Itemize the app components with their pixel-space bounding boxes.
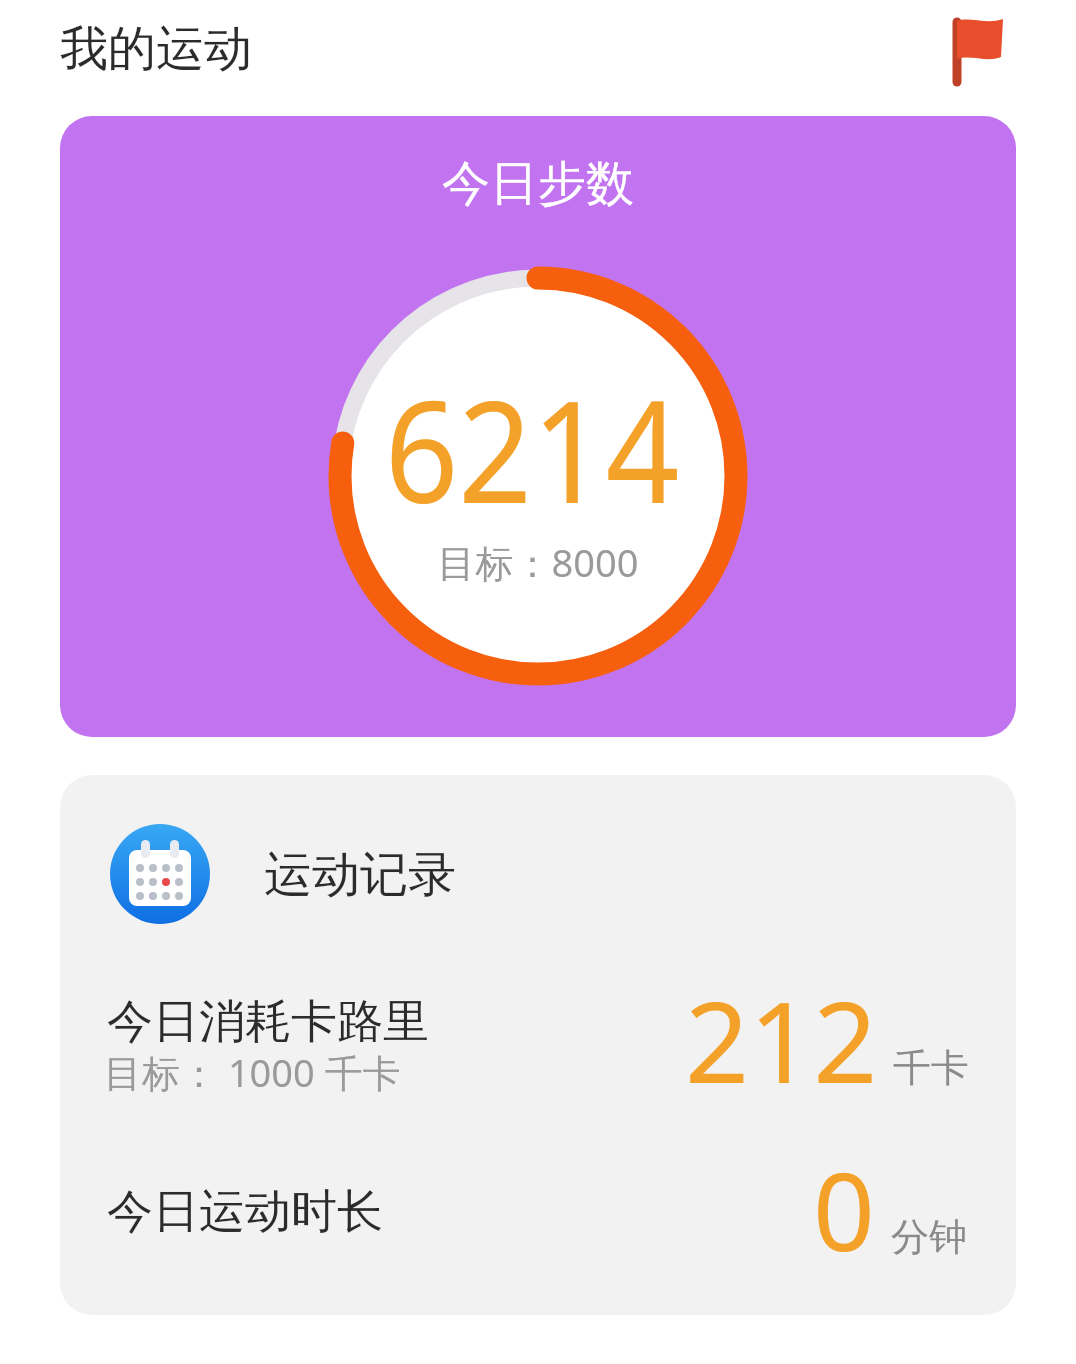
staticText: 今日运动时长 xyxy=(107,1183,383,1241)
staticText: 212 xyxy=(685,963,878,1093)
staticText: 分钟 xyxy=(891,1213,967,1261)
button[interactable] xyxy=(110,824,210,924)
staticText: 目标： 1000 千卡 xyxy=(104,1046,401,1098)
staticText: 千卡 xyxy=(893,1044,969,1092)
staticText: 今日步数 xyxy=(60,154,1016,214)
staticText: 今日消耗卡路里 xyxy=(107,993,429,1051)
staticText: 我的运动 xyxy=(60,19,252,79)
staticText: 6214 xyxy=(92,353,972,544)
staticText: 0 xyxy=(813,1136,875,1256)
staticText: 目标：8000 xyxy=(60,536,1016,588)
button[interactable] xyxy=(948,16,1010,88)
button[interactable]: 运动记录 xyxy=(264,845,456,905)
button[interactable]: 今日步数 xyxy=(60,116,1016,737)
